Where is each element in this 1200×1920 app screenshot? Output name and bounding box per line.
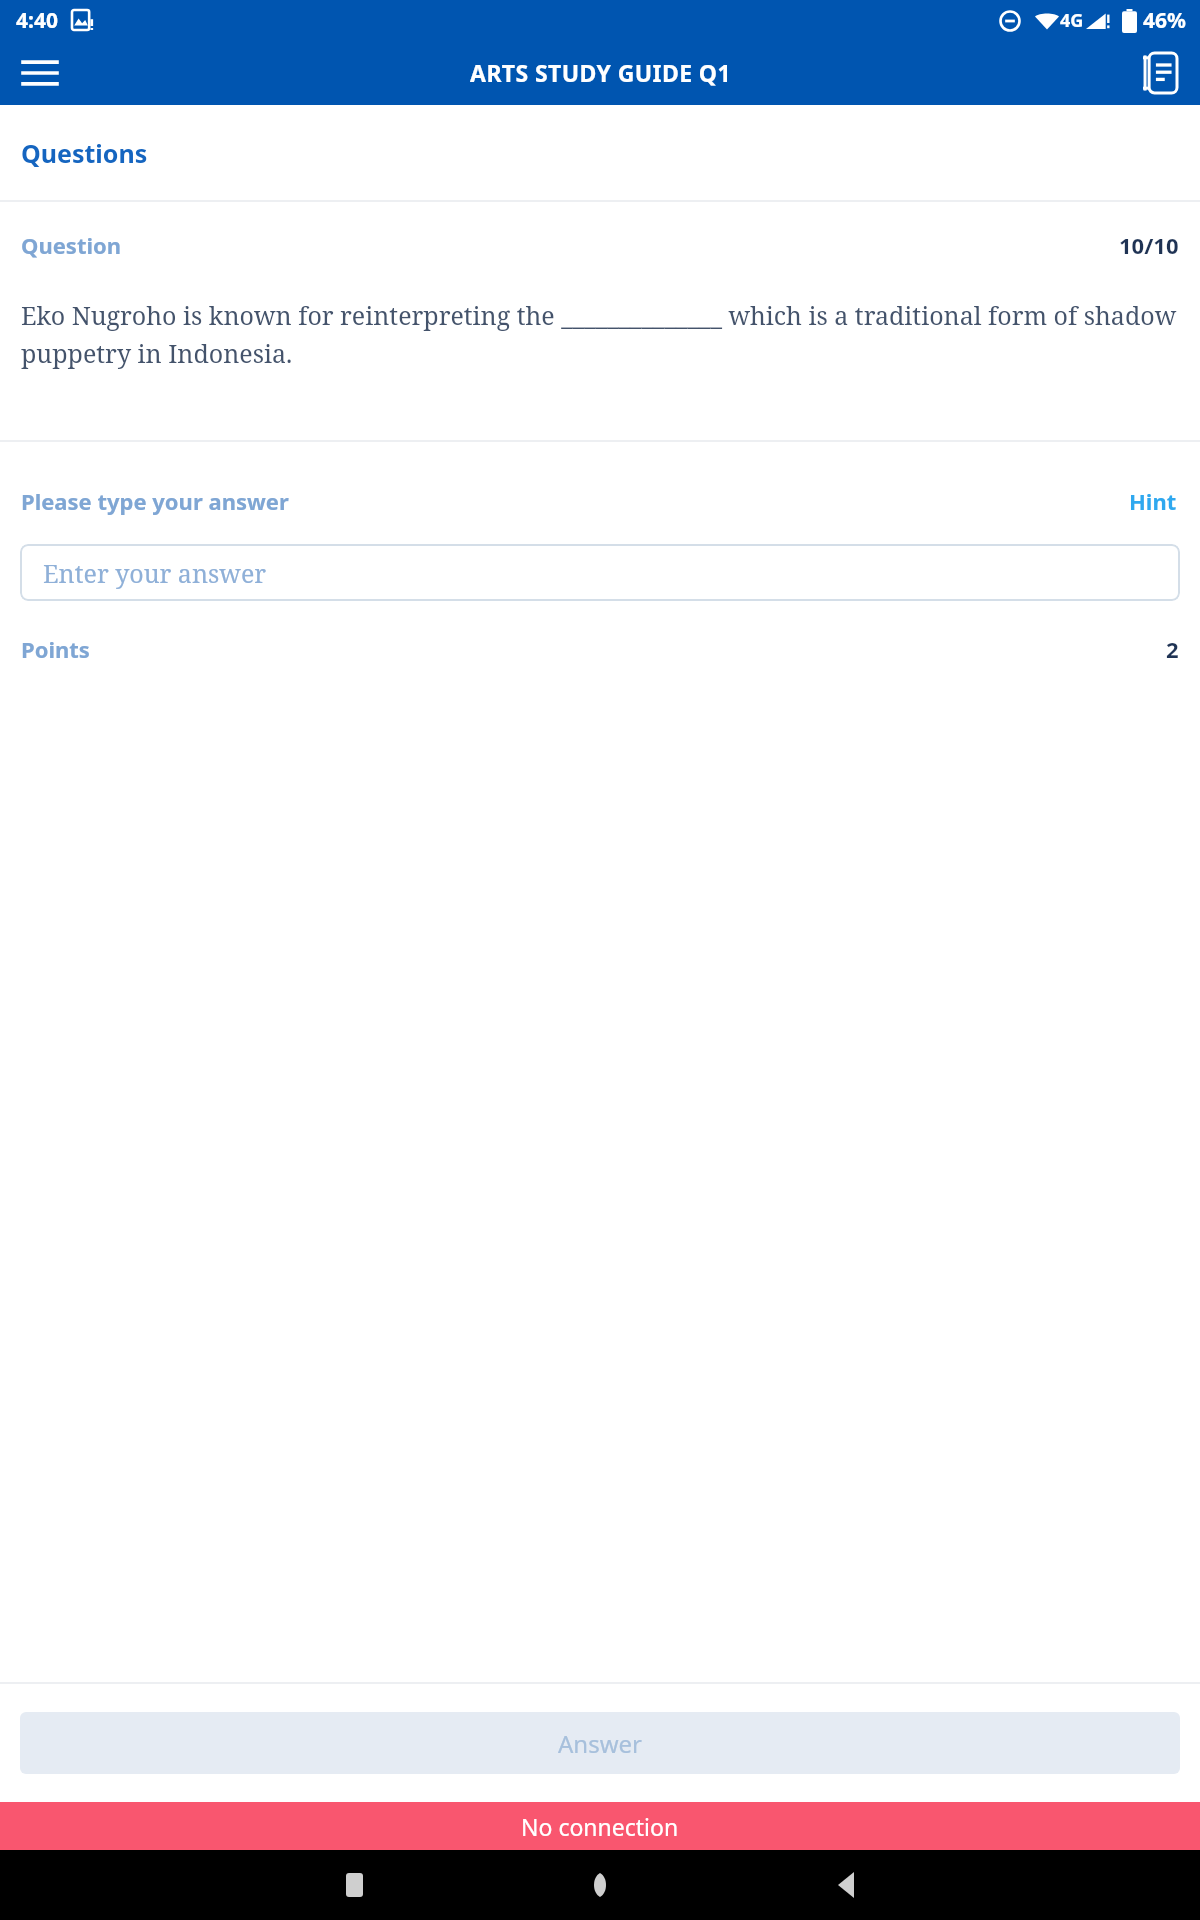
staticText: Please type your answer	[21, 486, 289, 516]
staticText: 4G	[1060, 8, 1084, 33]
button[interactable]: Back	[822, 1861, 870, 1909]
staticText: Answer	[558, 1727, 642, 1760]
staticText: Question	[21, 230, 122, 260]
staticText: Eko Nugroho is known for reinterpreting …	[21, 298, 1179, 370]
button[interactable]: Notes	[1132, 45, 1188, 101]
button[interactable]: Enter your answer	[20, 544, 1180, 601]
staticText: Points	[21, 634, 90, 664]
staticText: No connection	[521, 1811, 679, 1842]
button[interactable]: Home	[576, 1861, 624, 1909]
staticText: ARTS STUDY GUIDE Q1	[470, 57, 731, 88]
button[interactable]: Open navigation menu	[12, 45, 68, 101]
staticText: 10/10	[1119, 230, 1179, 260]
button[interactable]: Answer	[20, 1712, 1180, 1774]
button[interactable]: Recent apps	[330, 1861, 378, 1909]
staticText: 46%	[1143, 6, 1186, 35]
staticText: Questions	[21, 136, 148, 170]
staticText: 2	[1166, 634, 1179, 664]
staticText: Enter your answer	[43, 556, 267, 590]
button[interactable]: Hint	[1127, 482, 1179, 520]
button[interactable]: Questions	[0, 105, 1200, 200]
staticText: Hint	[1129, 486, 1177, 516]
staticText: 4:40	[16, 6, 58, 35]
